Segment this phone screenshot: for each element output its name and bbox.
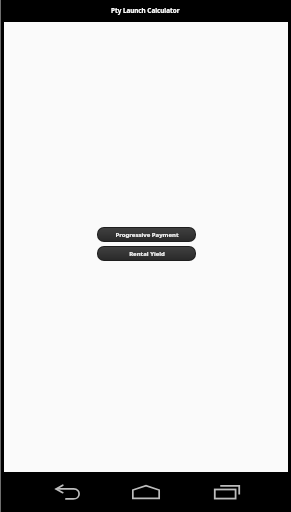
button[interactable]: Home <box>126 472 166 512</box>
button[interactable]: Back <box>48 472 88 512</box>
staticText: Progressive Payment <box>115 231 179 239</box>
button[interactable]: Progressive Payment <box>98 228 195 241</box>
staticText: Rental Yield <box>129 250 165 258</box>
button[interactable]: Recent apps <box>207 472 247 512</box>
button[interactable]: Rental Yield <box>98 247 195 260</box>
staticText: Pty Launch Calculator <box>111 6 180 15</box>
